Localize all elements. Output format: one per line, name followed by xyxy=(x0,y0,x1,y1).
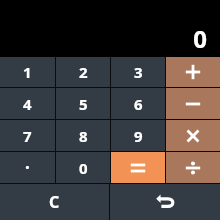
button[interactable]: Backspace xyxy=(110,184,220,220)
staticText: 1 xyxy=(23,62,32,82)
button[interactable]: Divide xyxy=(166,152,220,183)
button[interactable]: Plus xyxy=(166,57,220,87)
staticText: 3 xyxy=(134,62,143,82)
button[interactable]: 3 xyxy=(111,57,165,87)
staticText: 0 xyxy=(79,158,88,178)
button[interactable]: C xyxy=(0,184,109,220)
button[interactable]: Minus xyxy=(166,88,220,119)
staticText: 0 xyxy=(193,22,207,55)
staticText: 5 xyxy=(79,94,88,114)
staticText: C xyxy=(49,191,60,213)
button[interactable]: · xyxy=(0,152,55,183)
button[interactable]: 2 xyxy=(56,57,110,87)
button[interactable]: 9 xyxy=(111,120,165,151)
staticText: 8 xyxy=(79,126,88,146)
staticText: 2 xyxy=(79,62,88,82)
staticText: 7 xyxy=(23,126,32,146)
button[interactable]: 6 xyxy=(111,88,165,119)
button[interactable]: 0 xyxy=(56,152,110,183)
button[interactable]: 8 xyxy=(56,120,110,151)
staticText: 6 xyxy=(134,94,143,114)
button[interactable]: Multiply xyxy=(166,120,220,151)
button[interactable]: 5 xyxy=(56,88,110,119)
button[interactable]: 7 xyxy=(0,120,55,151)
staticText: 4 xyxy=(23,94,32,114)
button[interactable]: 1 xyxy=(0,57,55,87)
button[interactable]: 4 xyxy=(0,88,55,119)
button[interactable]: Equals xyxy=(111,152,165,183)
staticText: 9 xyxy=(134,126,143,146)
staticText: · xyxy=(25,156,30,179)
